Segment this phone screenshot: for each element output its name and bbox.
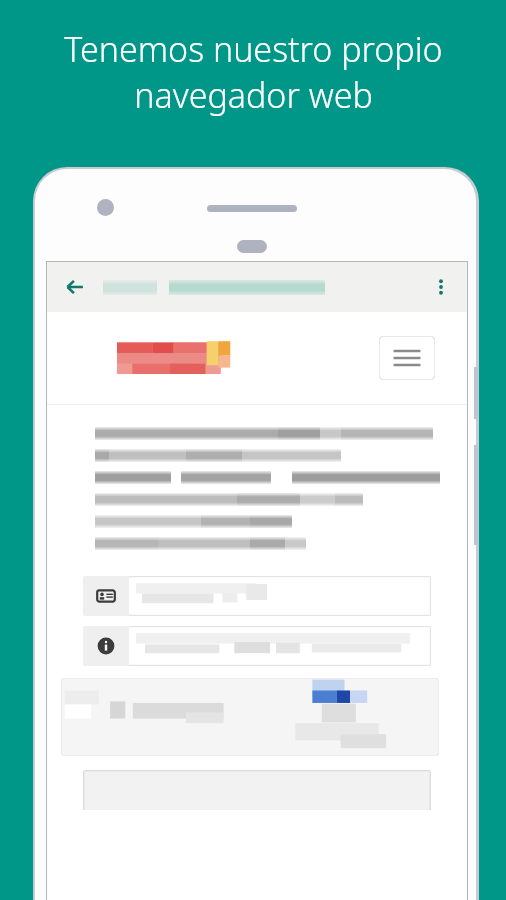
button[interactable]: Menu <box>379 336 435 380</box>
button[interactable] <box>83 770 431 810</box>
button[interactable]: Info field <box>83 626 431 666</box>
button[interactable]: Back <box>55 267 95 307</box>
staticText: navegador web <box>134 72 373 118</box>
button[interactable]: More options <box>421 267 461 307</box>
button[interactable]: Address bar <box>103 280 325 295</box>
staticText: Tenemos nuestro propio <box>64 26 443 72</box>
button[interactable]: Site logo <box>117 338 235 378</box>
button[interactable]: Card number field <box>83 576 431 616</box>
button[interactable] <box>61 678 439 756</box>
